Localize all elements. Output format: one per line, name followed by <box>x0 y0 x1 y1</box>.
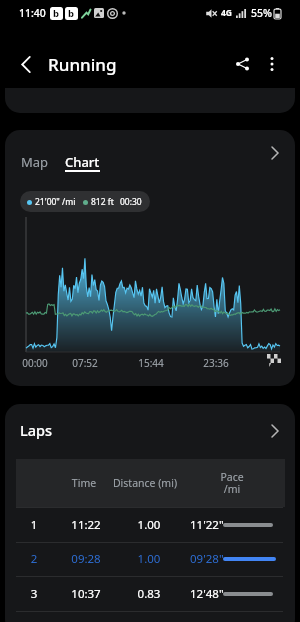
button[interactable]: 3 <box>5 576 295 611</box>
staticText: b <box>68 7 75 20</box>
staticText: Laps <box>20 420 53 440</box>
staticText: 11'22" <box>190 517 224 533</box>
button[interactable]: Back <box>6 44 46 84</box>
staticText: Map <box>21 153 49 171</box>
staticText: Time <box>54 476 114 490</box>
staticText: 55% <box>251 6 272 20</box>
staticText: 21'00" /mi <box>35 196 76 208</box>
staticText: Chart <box>65 153 100 171</box>
staticText: Distance (mi) <box>103 476 187 490</box>
staticText: 07:52 <box>65 356 105 370</box>
staticText: b <box>53 7 60 20</box>
staticText: 00:00 <box>15 356 55 370</box>
staticText: Pace /mi <box>192 470 272 496</box>
staticText: 12'48" <box>190 586 224 602</box>
button[interactable]: Laps <box>5 404 295 458</box>
staticText: 11:40 <box>19 6 46 20</box>
button[interactable]: 2 <box>5 542 295 576</box>
button[interactable]: Share <box>223 45 261 83</box>
staticText: 3 <box>21 586 47 602</box>
button[interactable]: Open chart details <box>258 136 292 170</box>
staticText: 4G <box>221 7 233 19</box>
staticText: 09:28 <box>56 551 116 567</box>
staticText: 1.00 <box>119 517 179 533</box>
staticText: 00:30 <box>120 196 142 208</box>
staticText: 1.00 <box>119 551 179 567</box>
button[interactable]: Chart <box>60 149 105 175</box>
button[interactable]: Map <box>16 149 54 175</box>
staticText: Running <box>48 53 117 76</box>
staticText: 11:22 <box>56 517 116 533</box>
staticText: 812 ft <box>91 196 114 208</box>
staticText: 1 <box>21 517 47 533</box>
staticText: 2 <box>21 551 47 567</box>
staticText: 09'28" <box>190 551 224 567</box>
button[interactable]: 1 <box>5 507 295 543</box>
button[interactable]: More options <box>253 45 291 83</box>
staticText: 15:44 <box>131 356 171 370</box>
staticText: 0.83 <box>119 586 179 602</box>
staticText: 23:36 <box>196 356 236 370</box>
staticText: 10:37 <box>56 586 116 602</box>
